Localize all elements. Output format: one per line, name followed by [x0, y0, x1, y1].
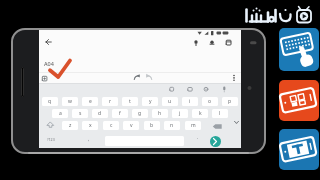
- staticText: ?123: [47, 137, 55, 142]
- button[interactable]: k: [192, 109, 208, 118]
- button[interactable]: z: [62, 121, 78, 130]
- staticText: i: [189, 98, 191, 105]
- button[interactable]: g: [132, 109, 148, 118]
- staticText: z: [69, 122, 72, 129]
- button[interactable]: v: [123, 121, 139, 130]
- staticText: q: [48, 98, 52, 105]
- button[interactable]: c: [103, 121, 119, 130]
- button[interactable]: p: [222, 97, 238, 106]
- staticText: e: [89, 98, 92, 105]
- button[interactable]: [279, 28, 319, 71]
- staticText: x: [89, 122, 92, 129]
- button[interactable]: [210, 136, 221, 147]
- button[interactable]: i: [182, 97, 198, 106]
- staticText: a: [59, 110, 62, 117]
- staticText: c: [110, 122, 113, 129]
- button[interactable]: u: [162, 97, 178, 106]
- staticText: g: [138, 110, 142, 117]
- staticText: l: [219, 110, 221, 117]
- button[interactable]: h: [152, 109, 168, 118]
- staticText: y: [149, 98, 152, 105]
- button[interactable]: o: [202, 97, 218, 106]
- staticText: A04: [44, 60, 54, 67]
- staticText: u: [168, 98, 172, 105]
- staticText: w: [68, 98, 72, 105]
- button[interactable]: t: [122, 97, 138, 106]
- button[interactable]: x: [82, 121, 98, 130]
- staticText: t: [129, 98, 131, 105]
- staticText: p: [228, 98, 232, 105]
- staticText: .: [197, 134, 199, 141]
- button[interactable]: n: [164, 121, 180, 130]
- button[interactable]: y: [142, 97, 158, 106]
- staticText: f: [119, 110, 121, 117]
- button[interactable]: f: [112, 109, 128, 118]
- button[interactable]: e: [82, 97, 98, 106]
- button[interactable]: j: [172, 109, 188, 118]
- staticText: h: [158, 110, 162, 117]
- staticText: n: [170, 122, 174, 129]
- button[interactable]: a: [52, 109, 68, 118]
- button[interactable]: [279, 129, 319, 170]
- staticText: m: [191, 122, 196, 129]
- staticText: b: [150, 122, 154, 129]
- button[interactable]: r: [102, 97, 118, 106]
- button[interactable]: q: [42, 97, 58, 106]
- staticText: r: [109, 98, 112, 105]
- button[interactable]: m: [185, 121, 201, 130]
- button[interactable]: s: [72, 109, 88, 118]
- button[interactable]: [279, 80, 319, 121]
- staticText: k: [199, 110, 202, 117]
- staticText: v: [130, 122, 133, 129]
- button[interactable]: d: [92, 109, 108, 118]
- staticText: d: [98, 110, 102, 117]
- staticText: o: [208, 98, 212, 105]
- button[interactable]: b: [144, 121, 160, 130]
- staticText: j: [179, 110, 181, 117]
- staticText: ,: [88, 136, 90, 143]
- button[interactable]: l: [212, 109, 228, 118]
- button[interactable]: w: [62, 97, 78, 106]
- staticText: s: [79, 110, 82, 117]
